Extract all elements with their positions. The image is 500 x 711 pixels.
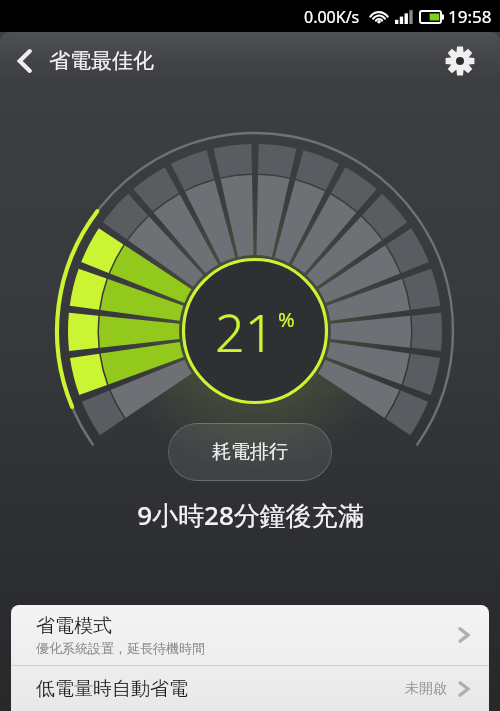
button[interactable]: Settings <box>438 39 482 83</box>
other: Back <box>14 48 36 74</box>
button[interactable]: 耗電排行 <box>168 423 332 481</box>
staticText: 省電模式 <box>36 614 112 638</box>
button[interactable]: 低電量時自動省電 <box>11 666 489 711</box>
button[interactable]: 省電模式 <box>11 605 489 665</box>
staticText: 未開啟 <box>405 680 447 698</box>
staticText: 省電最佳化 <box>49 48 154 74</box>
staticText: 耗電排行 <box>212 440 288 464</box>
button[interactable]: Back <box>0 32 164 90</box>
staticText: 9小時28分鐘後充滿 <box>137 497 364 533</box>
staticText: 21 <box>215 296 275 367</box>
staticText: 0.00K/s <box>304 6 360 28</box>
staticText: % <box>278 306 295 333</box>
staticText: 低電量時自動省電 <box>36 677 405 701</box>
staticText: 19:58 <box>448 5 492 28</box>
staticText: 優化系統設置，延長待機時間 <box>36 640 205 656</box>
